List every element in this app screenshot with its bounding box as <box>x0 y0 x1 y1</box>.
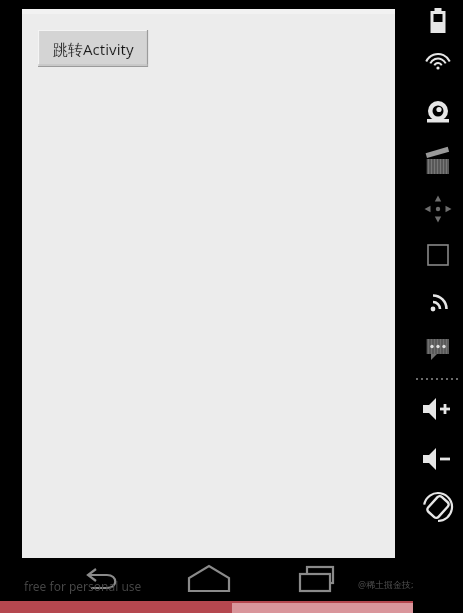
button[interactable]: GPS <box>425 48 451 82</box>
button[interactable]: Home <box>180 562 238 598</box>
staticText: 跳转Activity <box>53 39 134 59</box>
button[interactable]: D-pad <box>425 192 451 226</box>
button[interactable]: Messages <box>425 332 451 366</box>
button[interactable]: Recent apps <box>290 562 348 598</box>
button[interactable]: Cellular <box>425 284 451 318</box>
button[interactable]: Record video <box>425 146 451 180</box>
button[interactable]: Battery <box>425 4 451 38</box>
button[interactable]: Camera <box>425 96 451 130</box>
staticText: @稀土掘金技术社区 <box>358 578 439 590</box>
button[interactable]: 跳转Activity <box>38 30 148 67</box>
button[interactable]: Volume down <box>425 442 451 476</box>
staticText: free for personal use <box>24 578 142 594</box>
button[interactable]: Rotate <box>425 490 451 524</box>
button[interactable]: Back <box>72 562 132 598</box>
button[interactable]: Device ID <box>425 238 451 272</box>
button[interactable]: Volume up <box>425 392 451 426</box>
